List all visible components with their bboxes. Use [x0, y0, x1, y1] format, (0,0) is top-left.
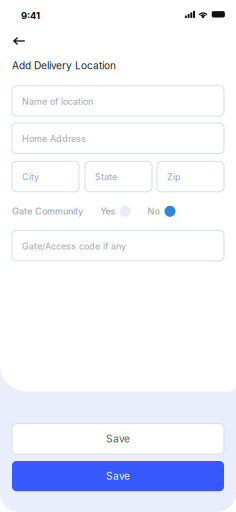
button[interactable]: Yes [101, 206, 129, 217]
button[interactable]: Gate community no [164, 206, 175, 217]
staticText: State [95, 172, 117, 183]
button[interactable]: Gate community yes [120, 206, 131, 217]
staticText: Name of location [22, 96, 93, 107]
staticText: Save [106, 470, 130, 482]
button[interactable]: Save [12, 424, 224, 454]
button[interactable]: Save [12, 461, 224, 491]
staticText: Save [106, 433, 130, 445]
staticText: 9:41 [21, 10, 40, 21]
staticText: Add Delivery Location [12, 59, 116, 72]
staticText: City [22, 172, 39, 183]
button[interactable]: No [147, 206, 171, 217]
staticText: Home Address [22, 133, 86, 144]
staticText: Zip [167, 172, 181, 183]
button[interactable]: Back [6, 30, 32, 52]
staticText: No [147, 206, 159, 217]
staticText: Yes [101, 206, 116, 217]
staticText: Gate/Access code if any [22, 241, 126, 252]
staticText: Gate Community [12, 206, 83, 217]
